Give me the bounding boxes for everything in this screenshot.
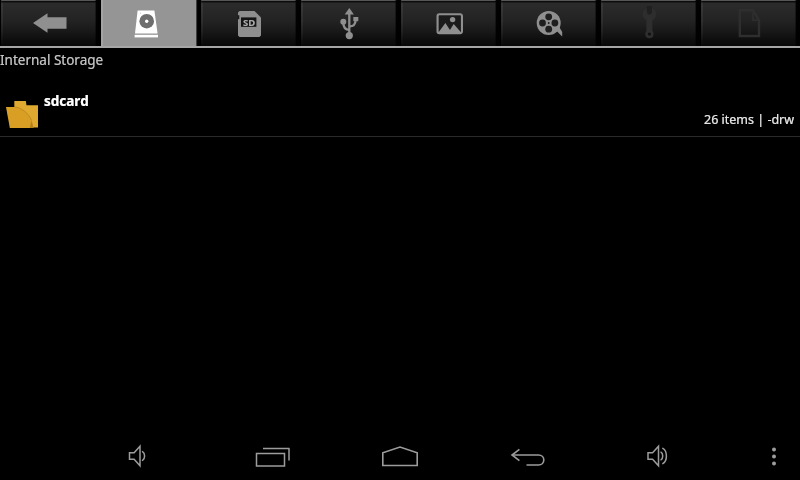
button[interactable]: Documents — [700, 0, 800, 46]
staticText: Internal Storage — [0, 51, 104, 69]
staticText: 26 items | -drw — [704, 111, 795, 128]
button[interactable]: Back — [0, 0, 100, 46]
button[interactable]: SD card — [200, 0, 300, 46]
staticText: sdcard — [44, 92, 89, 110]
button[interactable]: Home — [372, 424, 428, 480]
button[interactable]: Internal storage — [100, 0, 200, 46]
button[interactable]: Movies — [500, 0, 600, 46]
button[interactable]: sdcard — [0, 71, 800, 136]
button[interactable]: Back — [501, 424, 557, 480]
button[interactable]: Recents — [245, 424, 301, 480]
staticText: SD — [243, 16, 256, 29]
button[interactable]: More options — [746, 424, 800, 480]
button[interactable]: Tools — [600, 0, 700, 46]
button[interactable]: Images — [400, 0, 500, 46]
button[interactable]: Volume down — [111, 424, 167, 480]
button[interactable]: Volume up — [632, 424, 688, 480]
button[interactable]: USB storage — [300, 0, 400, 46]
